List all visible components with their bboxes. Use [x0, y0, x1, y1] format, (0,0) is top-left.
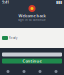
- button[interactable]: Continue: [2, 58, 62, 63]
- staticText: Continue: [22, 58, 41, 64]
- button[interactable]: Tab: [0, 68, 16, 75]
- staticText: Welcome back: [18, 13, 45, 18]
- button[interactable]: Tab: [32, 68, 48, 75]
- staticText: 9:41: [2, 0, 9, 5]
- button[interactable]: Tab: [48, 68, 64, 75]
- button[interactable]: Tab: [16, 68, 32, 75]
- staticText: ▮▮▮: [56, 0, 62, 4]
- staticText: Ready: [9, 36, 17, 40]
- staticText: Sign in to continue: [18, 18, 46, 22]
